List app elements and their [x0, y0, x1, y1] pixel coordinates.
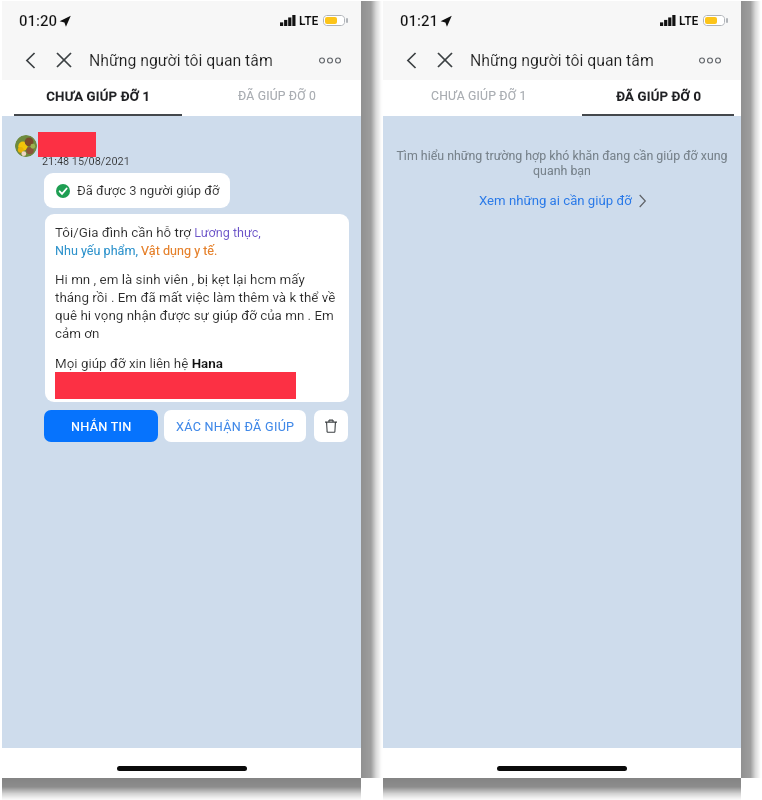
staticText: Tìm hiểu những trường hợp khó khăn đang … — [391, 148, 733, 178]
staticText: NHẮN TIN — [71, 419, 132, 434]
staticText: LTE — [299, 14, 319, 28]
button[interactable]: Xem những ai cần giúp đỡ — [475, 190, 650, 211]
staticText: 01:20 — [19, 12, 58, 30]
button[interactable]: ĐÃ GIÚP ĐỠ 0 — [575, 80, 741, 116]
button[interactable]: XÁC NHẬN ĐÃ GIÚP — [164, 410, 306, 442]
button[interactable]: Đã được 3 người giúp đỡ — [44, 173, 230, 208]
staticText: Những người tôi quan tâm — [89, 51, 273, 70]
staticText: Mọi giúp đỡ xin liên hệ Hana — [55, 356, 223, 372]
button[interactable]: Back — [396, 43, 426, 77]
staticText: ĐÃ GIÚP ĐỠ 0 — [238, 89, 317, 103]
staticText: Tôi/Gia đình cần hỗ trợ Lương thực, Nhu … — [55, 225, 261, 258]
button[interactable]: More options — [691, 43, 729, 77]
staticText: Đã được 3 người giúp đỡ — [77, 183, 220, 198]
button[interactable]: More options — [311, 43, 349, 77]
staticText: XÁC NHẬN ĐÃ GIÚP — [176, 419, 295, 434]
button[interactable]: Back — [15, 43, 45, 77]
button[interactable]: ĐÃ GIÚP ĐỠ 0 — [194, 80, 361, 116]
staticText: 21:48 15/08/2021 — [42, 155, 130, 168]
staticText: CHƯA GIÚP ĐỠ 1 — [46, 89, 150, 104]
button[interactable]: Delete — [314, 410, 348, 442]
button[interactable]: CHƯA GIÚP ĐỠ 1 — [2, 80, 194, 116]
staticText: Những người tôi quan tâm — [470, 51, 654, 70]
button[interactable]: CHƯA GIÚP ĐỠ 1 — [383, 80, 575, 116]
staticText: ĐÃ GIÚP ĐỠ 0 — [616, 89, 701, 104]
button[interactable]: Close — [49, 43, 79, 77]
button[interactable]: Close — [430, 43, 460, 77]
staticText: 01:21 — [400, 12, 439, 30]
staticText: CHƯA GIÚP ĐỠ 1 — [431, 89, 527, 103]
staticText: Xem những ai cần giúp đỡ — [479, 193, 632, 208]
staticText: LTE — [679, 14, 699, 28]
button[interactable]: NHẮN TIN — [44, 410, 158, 442]
staticText: Hi mn , em là sinh viên , bị kẹt lại hcm… — [55, 272, 339, 342]
